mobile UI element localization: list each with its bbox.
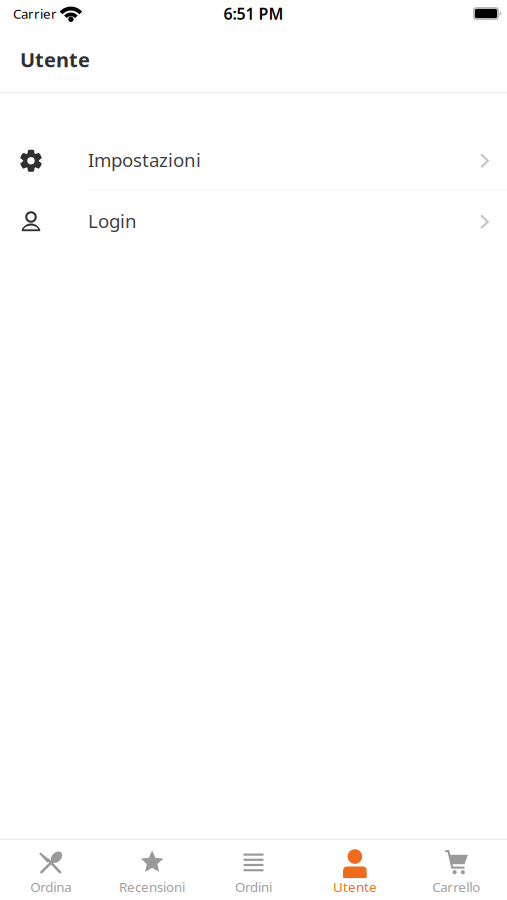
button[interactable]: Ordini (203, 840, 304, 900)
staticText: Ordini (235, 878, 272, 896)
button[interactable]: Login (0, 191, 507, 250)
staticText: Utente (20, 46, 90, 73)
staticText: Impostazioni (88, 147, 201, 172)
staticText: Recensioni (119, 878, 185, 896)
button[interactable]: Impostazioni (0, 130, 507, 191)
staticText: Utente (333, 878, 377, 896)
button[interactable]: Ordina (0, 840, 101, 900)
staticText: Login (88, 208, 137, 233)
staticText: Carrier (13, 5, 57, 22)
staticText: Ordina (30, 878, 71, 896)
button[interactable]: Utente (304, 840, 406, 900)
staticText: Carrello (432, 878, 480, 896)
staticText: 6:51 PM (223, 3, 283, 24)
button[interactable]: Recensioni (101, 840, 203, 900)
button[interactable]: Carrello (406, 840, 507, 900)
